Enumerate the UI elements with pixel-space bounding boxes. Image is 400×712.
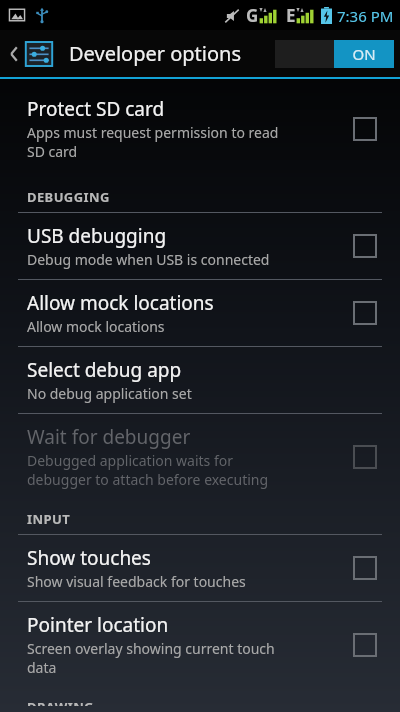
- button[interactable]: Allow mock locations: [0, 280, 400, 346]
- staticText: 7:36 PM: [337, 6, 394, 26]
- staticText: INPUT: [27, 510, 71, 528]
- staticText: E: [286, 4, 296, 27]
- staticText: Show visual feedback for touches: [27, 572, 246, 591]
- button[interactable]: USB debugging: [348, 229, 382, 263]
- staticText: Wait for debugger: [27, 424, 191, 450]
- staticText: Allow mock locations: [27, 317, 165, 336]
- button[interactable]: Show touches: [0, 535, 400, 601]
- staticText: USB debugging: [27, 223, 167, 249]
- staticText: Apps must request permission to read SD …: [27, 123, 279, 161]
- staticText: Pointer location: [27, 612, 169, 638]
- button[interactable]: Pointer location: [0, 602, 400, 687]
- button[interactable]: Developer options on: [275, 40, 394, 68]
- staticText: DRAWING: [27, 698, 94, 706]
- staticText: Debugged application waits for debugger …: [27, 451, 269, 489]
- button[interactable]: Wait for debugger: [0, 414, 400, 499]
- button[interactable]: Allow mock locations: [348, 296, 382, 330]
- button[interactable]: USB debugging: [0, 213, 400, 279]
- button[interactable]: Protect SD card: [348, 112, 382, 146]
- staticText: Show touches: [27, 545, 151, 571]
- staticText: Debug mode when USB is connected: [27, 250, 270, 269]
- button[interactable]: Navigate up: [0, 35, 58, 73]
- staticText: No debug application set: [27, 384, 192, 403]
- button[interactable]: Select debug app: [0, 347, 400, 413]
- button[interactable]: Wait for debugger: [348, 440, 382, 474]
- staticText: G: [246, 4, 259, 27]
- staticText: Screen overlay showing current touch dat…: [27, 639, 275, 677]
- staticText: DEBUGGING: [27, 188, 110, 206]
- staticText: Protect SD card: [27, 96, 165, 122]
- staticText: ON: [352, 44, 376, 64]
- staticText: Developer options: [69, 40, 242, 67]
- button[interactable]: Pointer location: [348, 628, 382, 662]
- button[interactable]: Protect SD card: [0, 86, 400, 171]
- staticText: Select debug app: [27, 357, 182, 383]
- staticText: Allow mock locations: [27, 290, 214, 316]
- button[interactable]: Show touches: [348, 551, 382, 585]
